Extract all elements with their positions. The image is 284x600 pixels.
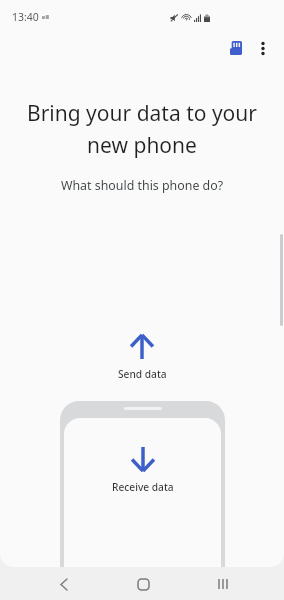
staticText: 13:40 bbox=[12, 10, 39, 24]
button[interactable]: Send data bbox=[0, 334, 284, 381]
staticText: Send data bbox=[118, 367, 167, 381]
button[interactable]: Recents bbox=[205, 568, 241, 600]
staticText: What should this phone do? bbox=[18, 177, 266, 194]
staticText: Receive data bbox=[112, 480, 174, 494]
staticText: Bring your data to your new phone bbox=[18, 99, 266, 159]
button[interactable]: Home bbox=[125, 568, 161, 600]
button[interactable]: SD card bbox=[223, 35, 249, 61]
button[interactable]: More options bbox=[250, 35, 276, 61]
button[interactable]: Back bbox=[46, 568, 82, 600]
button[interactable]: Receive data bbox=[60, 401, 225, 567]
